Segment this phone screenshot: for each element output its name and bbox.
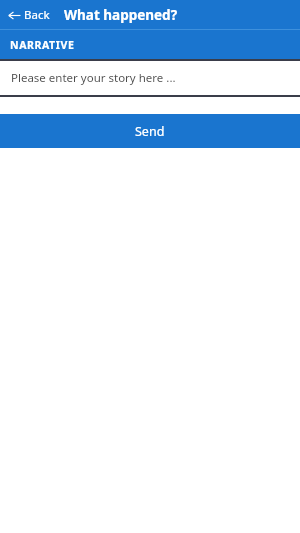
staticText: Back bbox=[24, 7, 50, 23]
staticText: What happened? bbox=[64, 6, 178, 24]
button[interactable]: Please enter your story here ... bbox=[0, 61, 300, 95]
button[interactable]: Send bbox=[0, 114, 300, 148]
staticText: Send bbox=[135, 123, 165, 140]
staticText: NARRATIVE bbox=[10, 38, 75, 52]
other: Back bbox=[8, 9, 21, 22]
button[interactable]: Back bbox=[4, 5, 54, 25]
staticText: Please enter your story here ... bbox=[11, 70, 176, 86]
